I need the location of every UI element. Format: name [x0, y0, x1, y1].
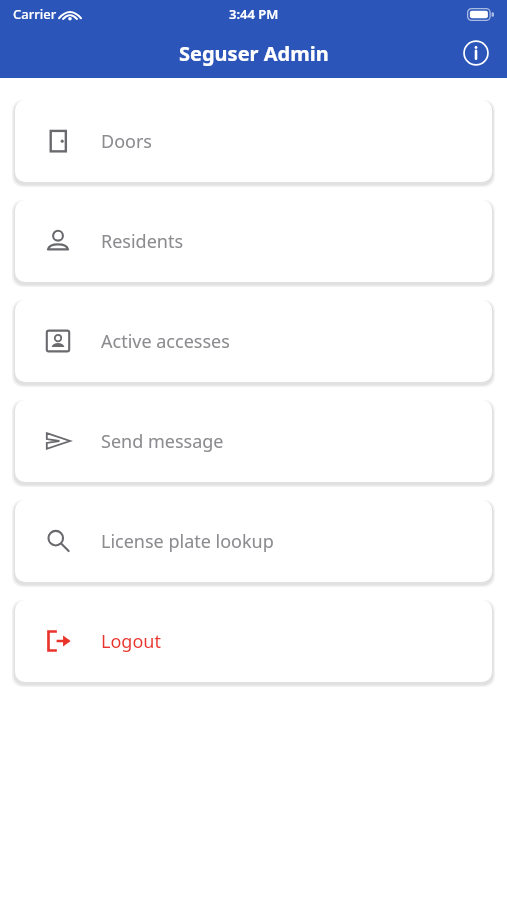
- staticText: License plate lookup: [101, 529, 274, 554]
- staticText: Doors: [101, 129, 152, 154]
- staticText: Active accesses: [101, 329, 230, 354]
- button[interactable]: Doors: [15, 100, 492, 182]
- button[interactable]: Residents: [15, 200, 492, 282]
- button[interactable]: Logout: [15, 600, 492, 682]
- staticText: Seguser Admin: [179, 40, 329, 67]
- staticText: Send message: [101, 429, 224, 454]
- staticText: Logout: [101, 629, 161, 654]
- staticText: 3:44 PM: [229, 5, 279, 23]
- staticText: Carrier: [13, 5, 57, 23]
- staticText: Residents: [101, 229, 184, 254]
- button[interactable]: Active accesses: [15, 300, 492, 382]
- button[interactable]: Send message: [15, 400, 492, 482]
- button[interactable]: License plate lookup: [15, 500, 492, 582]
- button[interactable]: Information: [456, 33, 496, 73]
